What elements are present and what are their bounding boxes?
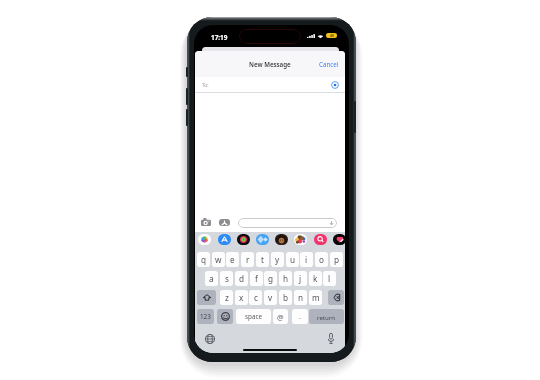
staticText: f	[255, 273, 258, 284]
button[interactable]: l	[323, 271, 336, 286]
staticText: c	[254, 292, 258, 303]
button[interactable]: Image Search	[314, 234, 327, 245]
button[interactable]: i	[300, 252, 313, 267]
button[interactable]: Cancel	[313, 56, 345, 72]
button[interactable]: z	[220, 290, 233, 305]
staticText: z	[225, 292, 229, 303]
button[interactable]: Apple Pay	[256, 234, 269, 245]
button[interactable]: o	[315, 252, 328, 267]
staticText: i	[305, 254, 308, 265]
button[interactable]: h	[279, 271, 292, 286]
button[interactable]: m	[309, 290, 322, 305]
staticText: u	[290, 254, 296, 265]
staticText: 123	[200, 312, 211, 321]
staticText: k	[313, 273, 318, 284]
button[interactable]: v	[264, 290, 277, 305]
staticText: s	[225, 273, 229, 284]
button[interactable]: j	[294, 271, 307, 286]
button[interactable]: Dictate	[328, 333, 334, 344]
staticText: .	[299, 312, 301, 322]
button[interactable]: d	[235, 271, 248, 286]
staticText: @	[277, 312, 284, 322]
button[interactable]: Apps	[219, 219, 230, 226]
button[interactable]: space	[236, 309, 271, 324]
staticText: o	[319, 254, 324, 265]
staticText: t	[261, 254, 264, 265]
button[interactable]: App Store	[218, 234, 231, 245]
button[interactable]: x	[235, 290, 248, 305]
button[interactable]: Music	[237, 234, 250, 245]
button[interactable]: b	[279, 290, 292, 305]
staticText: Cancel	[319, 60, 339, 68]
staticText: g	[268, 273, 274, 284]
button[interactable]: @	[273, 309, 288, 324]
staticText: q	[201, 254, 207, 265]
staticText: space	[245, 312, 262, 321]
staticText: v	[268, 292, 273, 303]
button[interactable]: Memoji	[275, 234, 288, 245]
button[interactable]: f	[250, 271, 263, 286]
button[interactable]: 123	[197, 309, 214, 324]
staticText: p	[334, 254, 340, 265]
button[interactable]: t	[256, 252, 269, 267]
staticText: x	[239, 292, 244, 303]
staticText: To:	[202, 82, 209, 89]
staticText: e	[230, 254, 235, 265]
staticText: w	[215, 254, 222, 265]
button[interactable]: Digital Touch	[333, 234, 345, 245]
staticText: r	[246, 254, 250, 265]
staticText: l	[328, 273, 331, 284]
button[interactable]: Change keyboard	[205, 334, 215, 344]
staticText: New Message	[249, 60, 291, 68]
button[interactable]: Camera	[201, 218, 211, 226]
button[interactable]: g	[264, 271, 277, 286]
staticText: b	[283, 292, 289, 303]
button[interactable]: n	[294, 290, 307, 305]
staticText: m	[312, 292, 320, 303]
staticText: j	[299, 273, 302, 284]
button[interactable]: q	[197, 252, 210, 267]
button[interactable]: c	[249, 290, 262, 305]
staticText: d	[239, 273, 245, 284]
button[interactable]: u	[286, 252, 299, 267]
button[interactable]: Message input field	[238, 218, 337, 228]
staticText: a	[209, 273, 214, 284]
button[interactable]: e	[226, 252, 239, 267]
button[interactable]: Stickers	[294, 234, 307, 245]
button[interactable]: Add contact	[331, 81, 339, 89]
button[interactable]: p	[330, 252, 343, 267]
staticText: h	[283, 273, 289, 284]
button[interactable]: Backspace	[328, 290, 344, 305]
button[interactable]: s	[220, 271, 233, 286]
button[interactable]: r	[241, 252, 254, 267]
button[interactable]: k	[309, 271, 322, 286]
button[interactable]: .	[292, 309, 308, 324]
staticText: 17:19	[211, 33, 228, 42]
button[interactable]: Emoji	[217, 309, 233, 324]
button[interactable]: w	[212, 252, 225, 267]
button[interactable]: return	[309, 309, 344, 324]
staticText: n	[298, 292, 304, 303]
staticText: 40	[330, 33, 334, 38]
button[interactable]: Photos	[198, 234, 211, 245]
staticText: return	[317, 313, 336, 321]
staticText: y	[275, 254, 280, 265]
button[interactable]: y	[271, 252, 284, 267]
button[interactable]: Shift	[197, 290, 216, 305]
button[interactable]: a	[205, 271, 218, 286]
